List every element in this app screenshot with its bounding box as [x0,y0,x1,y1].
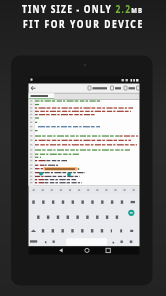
button[interactable] [55,246,67,255]
button[interactable] [28,93,54,100]
button[interactable] [123,84,135,93]
staticText: FIT FOR YOUR DEVICE [23,17,144,31]
button[interactable] [60,238,108,247]
button[interactable] [102,246,114,255]
button[interactable] [87,84,109,93]
button[interactable] [81,246,93,255]
staticText: TINY SIZE - ONLY 2.2MB [22,2,144,16]
button[interactable] [127,209,136,218]
button[interactable] [31,84,39,92]
button[interactable] [110,84,122,93]
button[interactable] [134,84,140,93]
